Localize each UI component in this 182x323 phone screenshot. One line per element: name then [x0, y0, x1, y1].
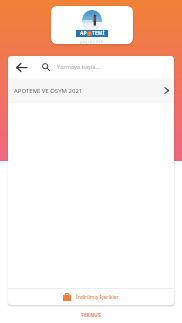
staticText: y a y ı n c ı l ı k	[80, 39, 104, 44]
staticText: FERNUS	[81, 312, 101, 318]
staticText: Yazmaya başla...	[57, 63, 100, 71]
staticText: AP	[80, 30, 87, 37]
button[interactable]: İndirilmiş İçerikler	[8, 289, 174, 305]
staticText: İndirilmiş İçerikler	[76, 294, 119, 301]
staticText: APOTEMİ VE ÖSYM 2021	[14, 87, 83, 95]
button[interactable]: Back	[14, 60, 28, 74]
staticText: TEMİ	[92, 30, 105, 37]
button[interactable]: APOTEMİ VE ÖSYM 2021	[8, 78, 174, 103]
